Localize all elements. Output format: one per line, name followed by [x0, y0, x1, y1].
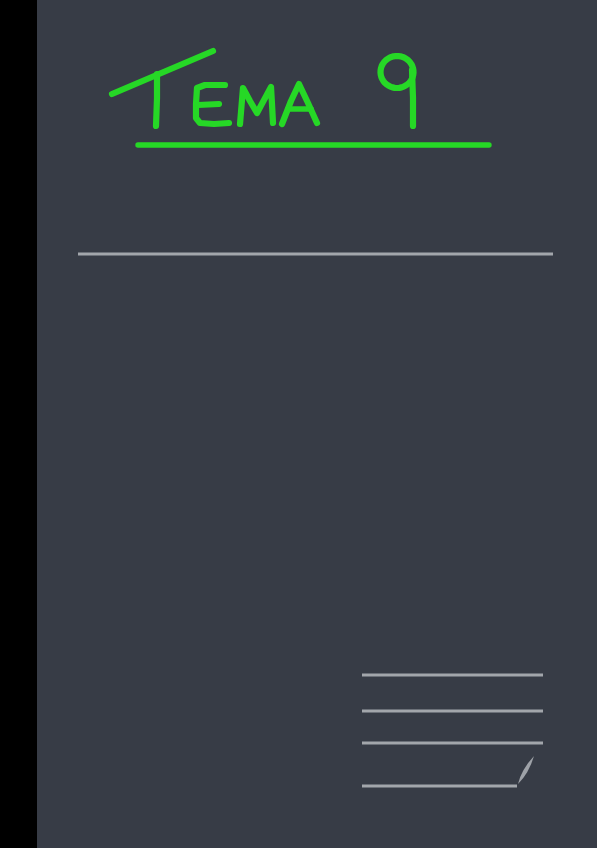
button[interactable]: Handwritten note page: Tema 9 [0, 0, 597, 848]
